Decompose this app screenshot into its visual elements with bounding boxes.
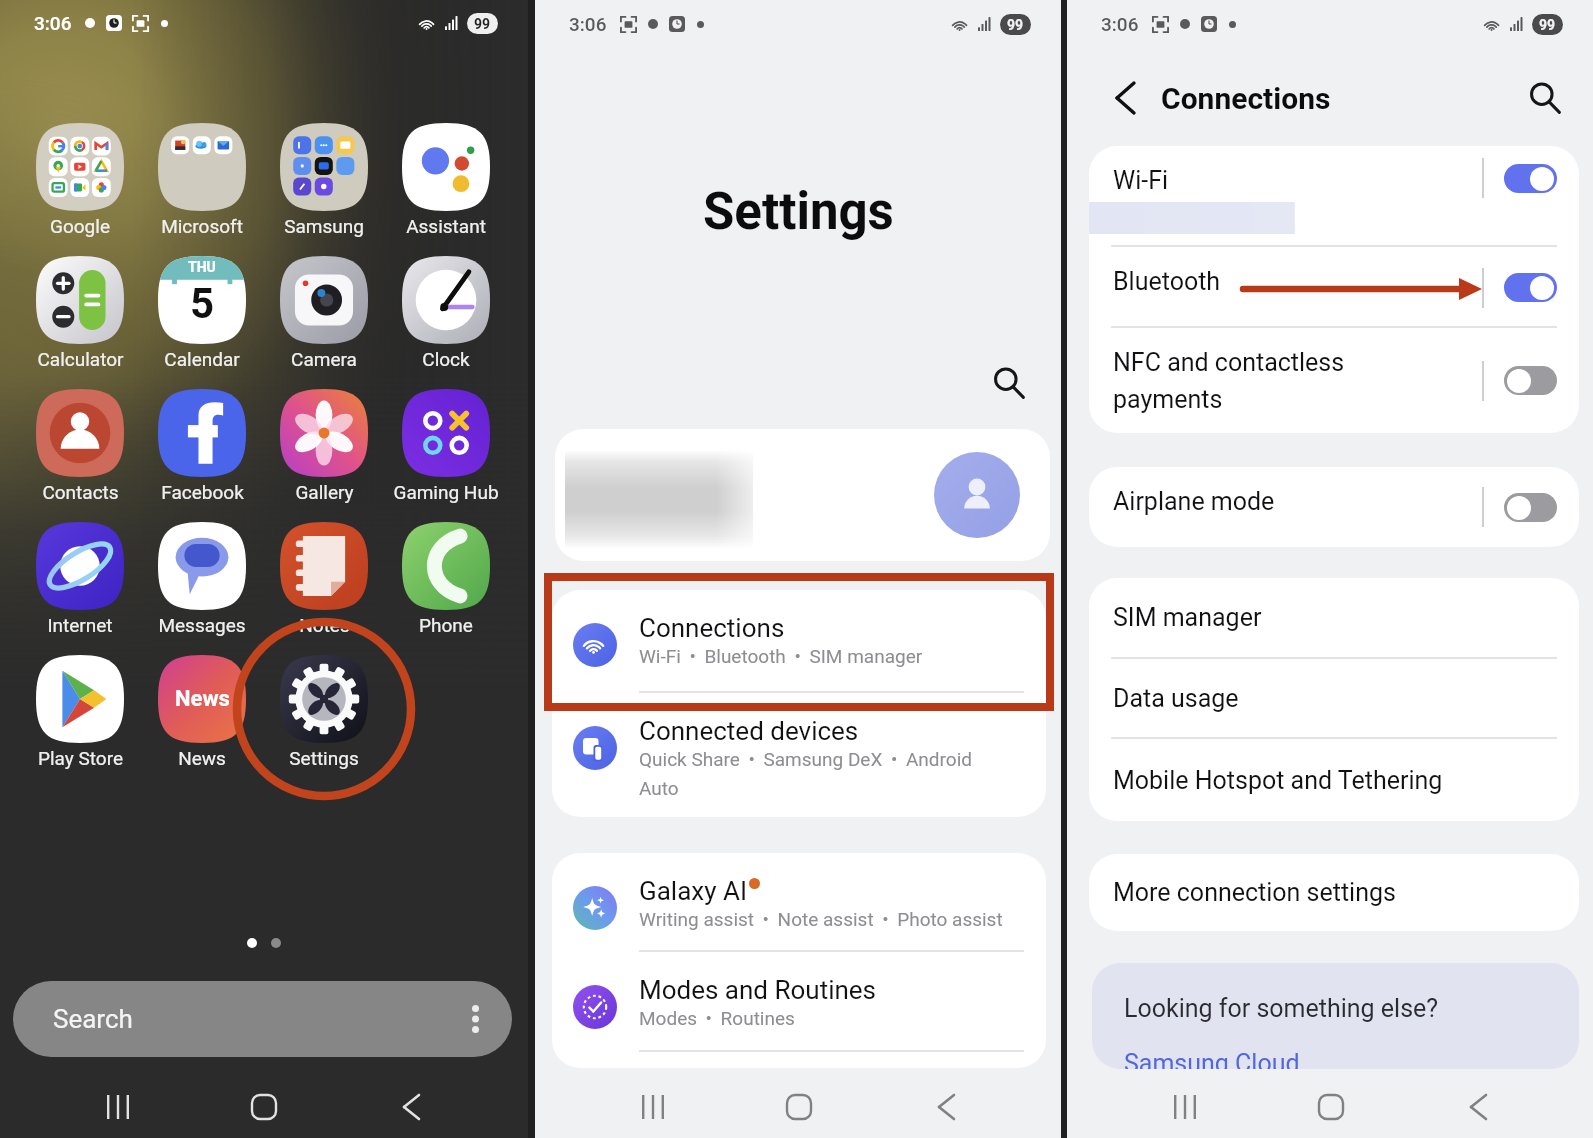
staticText: Data usage xyxy=(1113,684,1239,713)
button[interactable]: Modes and Routines xyxy=(552,952,1046,1052)
button[interactable]: Search xyxy=(13,981,512,1057)
staticText: News xyxy=(175,686,230,712)
button[interactable]: Google xyxy=(22,123,138,247)
button[interactable]: Toggle off xyxy=(1504,493,1557,522)
button[interactable]: Galaxy AI xyxy=(552,853,1046,952)
staticText: 3:06 xyxy=(569,13,607,35)
staticText: 3:06 xyxy=(1101,13,1139,35)
button[interactable]: Clock xyxy=(388,256,504,380)
staticText: 99 xyxy=(1007,17,1024,33)
button[interactable]: Wi-Fi xyxy=(1089,146,1579,247)
button[interactable]: Search xyxy=(985,359,1033,407)
staticText: Modes • Routines xyxy=(639,1007,795,1029)
button[interactable]: THU xyxy=(144,256,260,380)
staticText: Microsoft xyxy=(161,215,243,237)
button[interactable]: Home xyxy=(767,1075,831,1138)
button[interactable]: Camera xyxy=(266,256,382,380)
button[interactable]: Assistant xyxy=(388,123,504,247)
button[interactable]: Back xyxy=(1446,1075,1510,1138)
button[interactable]: Messages xyxy=(144,522,260,646)
staticText: Gallery xyxy=(295,481,354,503)
staticText: Writing assist • Note assist • Photo ass… xyxy=(639,908,1003,930)
button[interactable]: Samsung xyxy=(266,123,382,247)
staticText: Connected devices xyxy=(639,716,859,746)
button[interactable]: SIM manager xyxy=(1089,578,1579,659)
button[interactable]: Connected devices xyxy=(552,693,1046,817)
staticText: 99 xyxy=(1539,17,1556,33)
staticText: Galaxy AI xyxy=(639,876,747,906)
staticText: Clock xyxy=(422,348,470,370)
staticText: Facebook xyxy=(161,481,244,503)
staticText: Play Store xyxy=(38,747,123,769)
staticText: Calculator xyxy=(37,348,124,370)
button[interactable]: NFC and contactless payments xyxy=(1089,328,1579,433)
button[interactable]: Toggle on xyxy=(1504,273,1557,302)
staticText: Wi-Fi xyxy=(1113,166,1169,195)
button[interactable]: Internet xyxy=(22,522,138,646)
staticText: Wi-Fi • Bluetooth • SIM manager xyxy=(639,645,923,667)
button[interactable]: Notes xyxy=(266,522,382,646)
staticText: Gaming Hub xyxy=(393,481,499,503)
staticText: Camera xyxy=(291,348,357,370)
button[interactable]: Mobile Hotspot and Tethering xyxy=(1089,739,1579,821)
staticText: Calendar xyxy=(164,348,240,370)
button[interactable]: Toggle off xyxy=(1504,366,1557,395)
staticText: Settings xyxy=(703,182,894,242)
staticText: Internet xyxy=(47,614,113,636)
staticText: Modes and Routines xyxy=(639,975,877,1005)
staticText: Notes xyxy=(299,614,350,636)
staticText: News xyxy=(178,747,226,769)
staticText: Samsung Cloud xyxy=(1124,1049,1300,1069)
staticText: More connection settings xyxy=(1113,878,1396,907)
button[interactable]: Back xyxy=(1101,74,1149,122)
button[interactable]: Connections xyxy=(552,590,1046,693)
button[interactable]: Settings xyxy=(266,655,382,779)
staticText: Airplane mode xyxy=(1113,487,1275,516)
button[interactable]: Bluetooth xyxy=(1089,247,1579,328)
button[interactable]: Contacts xyxy=(22,389,138,513)
staticText: THU xyxy=(188,259,216,275)
staticText: NFC and contactless payments xyxy=(1113,348,1373,414)
button[interactable]: Gaming Hub xyxy=(388,389,504,513)
button[interactable]: News xyxy=(144,655,260,779)
staticText: Settings xyxy=(289,747,359,769)
button[interactable]: Home xyxy=(1299,1075,1363,1138)
staticText: Looking for something else? xyxy=(1124,994,1439,1023)
button[interactable]: Airplane mode xyxy=(1089,467,1579,547)
staticText: Connections xyxy=(1161,81,1331,116)
staticText: Connections xyxy=(639,613,785,643)
button[interactable]: Gallery xyxy=(266,389,382,513)
staticText: Mobile Hotspot and Tethering xyxy=(1113,766,1443,795)
button[interactable]: Phone xyxy=(388,522,504,646)
staticText: Contacts xyxy=(42,481,119,503)
button[interactable]: Search xyxy=(1521,74,1569,122)
staticText: Bluetooth xyxy=(1113,267,1221,296)
button[interactable]: Calculator xyxy=(22,256,138,380)
staticText: Messages xyxy=(158,614,246,636)
button[interactable]: Back xyxy=(379,1075,443,1138)
staticText: Google xyxy=(50,215,110,237)
button[interactable]: Facebook xyxy=(144,389,260,513)
button[interactable]: Microsoft xyxy=(144,123,260,247)
button[interactable]: More connection settings xyxy=(1089,854,1579,931)
button[interactable] xyxy=(555,429,1050,561)
staticText: Quick Share • Samsung DeX • Android Auto xyxy=(639,748,1001,800)
staticText: Assistant xyxy=(406,215,486,237)
button[interactable]: Data usage xyxy=(1089,659,1579,739)
staticText: 5 xyxy=(190,279,215,328)
button[interactable]: Toggle on xyxy=(1504,164,1557,193)
staticText: SIM manager xyxy=(1113,603,1262,632)
button[interactable]: Recents xyxy=(1153,1075,1217,1138)
button[interactable]: Recents xyxy=(621,1075,685,1138)
button[interactable]: Looking for something else? xyxy=(1092,963,1579,1069)
button[interactable]: Home xyxy=(232,1075,296,1138)
button[interactable]: Play Store xyxy=(22,655,138,779)
button[interactable]: Recents xyxy=(86,1075,150,1138)
staticText: Search xyxy=(53,1004,133,1034)
button[interactable]: Back xyxy=(914,1075,978,1138)
staticText: 3:06 xyxy=(34,12,72,34)
staticText: Samsung xyxy=(284,215,364,237)
staticText: Phone xyxy=(419,614,473,636)
staticText: 99 xyxy=(474,16,491,32)
